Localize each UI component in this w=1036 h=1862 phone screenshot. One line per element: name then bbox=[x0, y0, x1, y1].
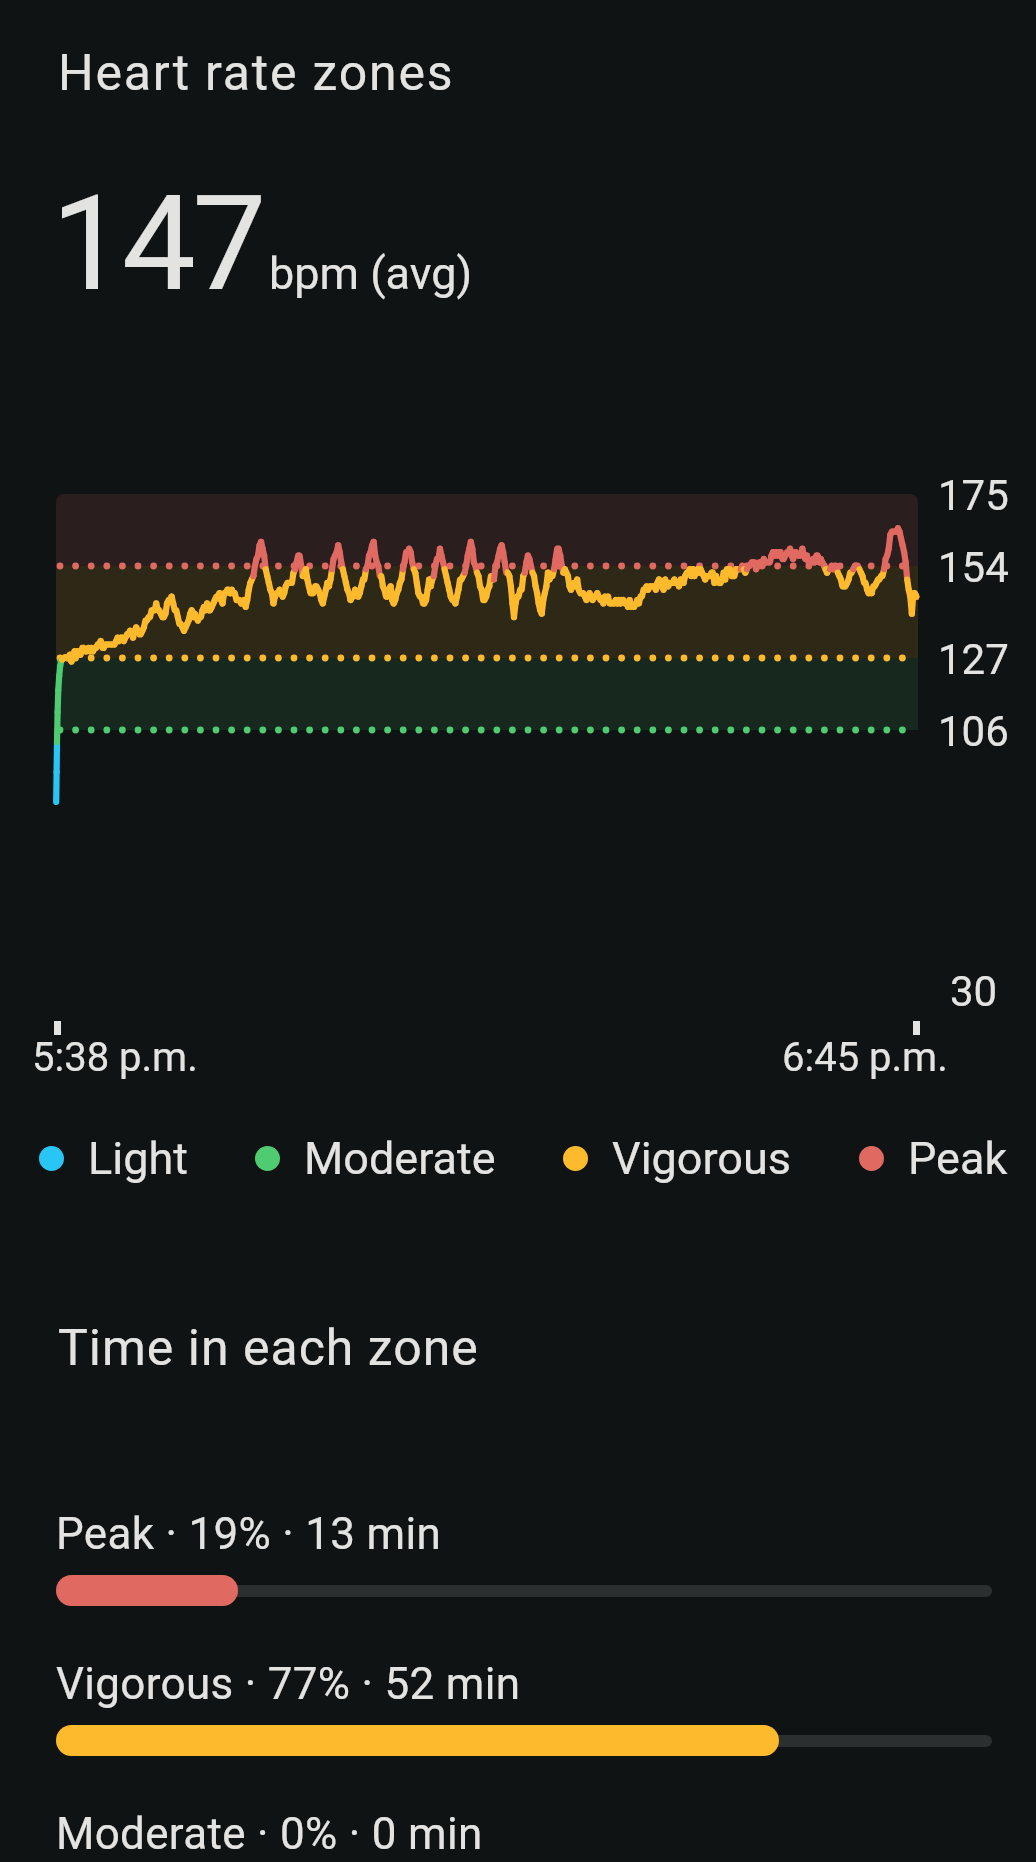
staticText: Moderate bbox=[304, 1132, 496, 1185]
staticText: 30 bbox=[950, 967, 998, 1016]
button[interactable]: Peak bbox=[859, 1132, 1008, 1185]
button[interactable]: Vigorous bbox=[563, 1132, 792, 1185]
staticText: bpm (avg) bbox=[269, 247, 473, 300]
button[interactable]: Moderate · 0% · 0 min bbox=[56, 1808, 992, 1862]
staticText: 106 bbox=[938, 707, 1009, 756]
staticText: Peak bbox=[908, 1132, 1008, 1185]
staticText: 147 bbox=[51, 167, 264, 322]
staticText: Vigorous bbox=[612, 1132, 792, 1185]
staticText: Peak · 19% · 13 min bbox=[56, 1508, 442, 1560]
staticText: 5:38 p.m. bbox=[32, 1034, 198, 1081]
staticText: 154 bbox=[938, 543, 1009, 592]
staticText: Light bbox=[88, 1132, 188, 1185]
button[interactable]: Vigorous · 77% · 52 min bbox=[56, 1658, 992, 1756]
staticText: 6:45 p.m. bbox=[782, 1034, 948, 1081]
button[interactable]: Light bbox=[39, 1132, 188, 1185]
staticText: Heart rate zones bbox=[58, 44, 455, 103]
staticText: Vigorous · 77% · 52 min bbox=[56, 1658, 521, 1710]
button[interactable]: Peak · 19% · 13 min bbox=[56, 1508, 992, 1606]
staticText: 127 bbox=[938, 635, 1009, 684]
staticText: 175 bbox=[938, 471, 1009, 520]
staticText: Moderate · 0% · 0 min bbox=[56, 1808, 483, 1860]
button[interactable]: Moderate bbox=[255, 1132, 496, 1185]
staticText: Time in each zone bbox=[58, 1319, 479, 1378]
